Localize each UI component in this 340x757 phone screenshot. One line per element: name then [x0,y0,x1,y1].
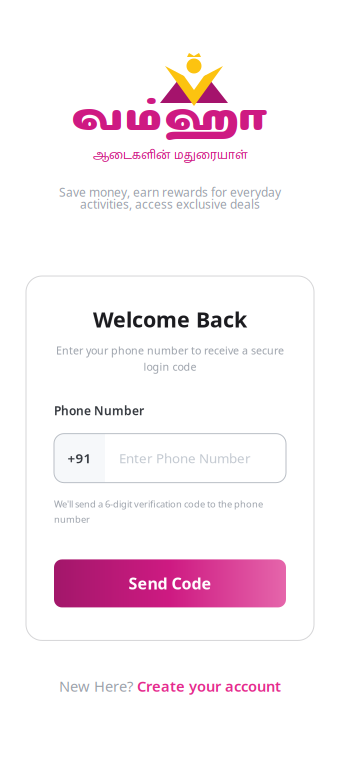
staticText: Phone Number [54,403,144,419]
staticText: Enter your phone number to receive a sec… [56,343,284,358]
staticText: login code [143,359,196,374]
staticText: number [54,513,90,525]
button[interactable]: Send Code [54,559,286,607]
staticText: Welcome Back [93,305,247,333]
staticText: ஆடைகளின் மதுரையாள் [93,144,247,166]
staticText: Enter Phone Number [119,449,251,467]
button[interactable]: New Here? [59,676,281,696]
staticText: Save money, earn rewards for everyday [59,184,281,200]
staticText: activities, access exclusive deals [80,196,260,212]
staticText: +91 [67,449,91,467]
staticText: Create your account [137,676,281,696]
staticText: We'll send a 6-digit verification code t… [54,498,263,510]
staticText: வம்ஹா [71,100,269,140]
staticText: New Here? [59,676,137,696]
staticText: Send Code [128,573,211,594]
